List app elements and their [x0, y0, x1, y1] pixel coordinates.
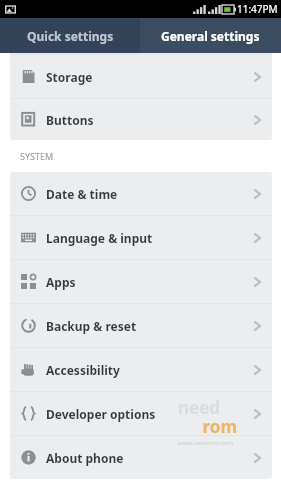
button[interactable]: Backup & reset	[10, 304, 272, 347]
button[interactable]: Developer options	[10, 392, 272, 435]
staticText: Language & input	[46, 230, 153, 246]
button[interactable]: Quick settings	[0, 18, 140, 53]
staticText: 11:47PM	[237, 2, 278, 16]
button[interactable]: Accessibility	[10, 348, 272, 391]
button[interactable]: Buttons	[10, 99, 272, 140]
staticText: General settings	[161, 28, 260, 44]
staticText: Accessibility	[46, 362, 120, 378]
staticText: rom	[202, 415, 237, 438]
button[interactable]: Apps	[10, 260, 272, 303]
staticText: About phone	[46, 450, 124, 466]
staticText: SYSTEM	[20, 150, 54, 162]
staticText: Buttons	[46, 112, 94, 128]
button[interactable]: Language & input	[10, 216, 272, 259]
staticText: Storage	[46, 69, 93, 85]
staticText: Quick settings	[27, 28, 114, 44]
staticText: Developer options	[46, 406, 156, 422]
staticText: Apps	[46, 274, 76, 290]
staticText: Backup & reset	[46, 318, 137, 334]
staticText: Date & time	[46, 186, 118, 202]
button[interactable]: General settings	[140, 18, 281, 53]
button[interactable]: Date & time	[10, 172, 272, 215]
staticText: www.needrom.com	[178, 439, 234, 447]
button[interactable]: Storage	[10, 55, 272, 98]
button[interactable]: About phone	[10, 436, 272, 479]
staticText: need	[178, 396, 221, 419]
